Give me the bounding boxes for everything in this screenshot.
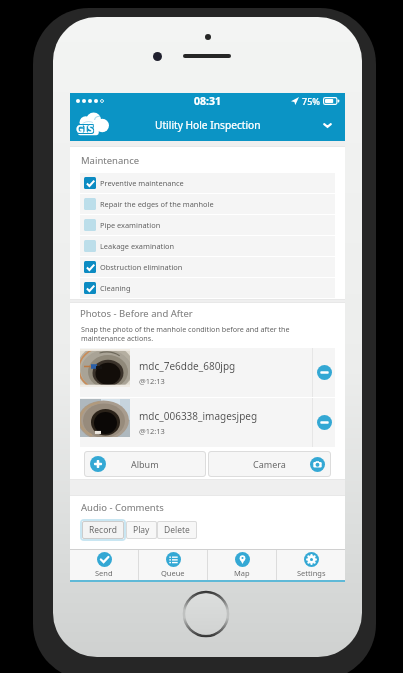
button[interactable]: Queue bbox=[139, 550, 207, 580]
staticText: Send bbox=[95, 568, 113, 578]
staticText: 75% bbox=[302, 95, 320, 107]
staticText: Maintenance bbox=[81, 154, 140, 167]
staticText: GIS bbox=[77, 120, 95, 135]
staticText: Play bbox=[133, 524, 150, 536]
staticText: GIS bbox=[76, 122, 94, 137]
button[interactable]: Cleaning bbox=[80, 278, 335, 298]
button[interactable]: Album bbox=[84, 451, 206, 477]
button[interactable]: Expand bbox=[317, 115, 337, 135]
staticText: Camera bbox=[253, 458, 286, 470]
staticText: Delete bbox=[164, 524, 190, 536]
staticText: @12:13 bbox=[139, 426, 165, 436]
button[interactable]: Leakage examination bbox=[80, 236, 335, 256]
button[interactable]: Send bbox=[70, 550, 138, 580]
staticText: Leakage examination bbox=[100, 241, 175, 251]
button[interactable]: Settings bbox=[277, 550, 345, 580]
button[interactable]: Repair the edges of the manhole bbox=[80, 194, 335, 214]
staticText: GIS bbox=[76, 121, 94, 136]
staticText: Settings bbox=[297, 568, 326, 578]
staticText: Queue bbox=[161, 568, 185, 578]
button[interactable]: mdc_7e6dde_680jpg bbox=[80, 348, 335, 397]
button[interactable]: Remove photo bbox=[313, 398, 335, 447]
staticText: Utility Hole Inspection bbox=[155, 118, 261, 132]
staticText: Preventive maintenance bbox=[100, 178, 184, 188]
staticText: GIS bbox=[75, 121, 93, 136]
staticText: GIS bbox=[75, 122, 93, 137]
staticText: @12:13 bbox=[139, 376, 165, 386]
button[interactable]: Obstruction elimination bbox=[80, 257, 335, 277]
staticText: Cleaning bbox=[100, 283, 131, 293]
staticText: mdc_006338_imagesjpeg bbox=[139, 409, 258, 423]
staticText: GIS bbox=[75, 120, 93, 135]
button[interactable]: Remove photo bbox=[313, 348, 335, 397]
staticText: Photos - Before and After bbox=[80, 307, 193, 320]
staticText: Pipe examination bbox=[100, 220, 161, 230]
button[interactable]: Record bbox=[82, 521, 124, 539]
staticText: Map bbox=[234, 568, 250, 578]
staticText: GIS bbox=[77, 121, 95, 136]
button[interactable]: Play bbox=[126, 521, 157, 539]
button[interactable]: Map bbox=[208, 550, 276, 580]
button[interactable]: mdc_006338_imagesjpeg bbox=[80, 398, 335, 447]
button[interactable]: Pipe examination bbox=[80, 215, 335, 235]
staticText: Snap the photo of the manhole condition … bbox=[81, 324, 303, 343]
staticText: Repair the edges of the manhole bbox=[100, 199, 214, 209]
staticText: GIS bbox=[76, 120, 94, 135]
staticText: Album bbox=[131, 458, 159, 470]
staticText: Audio - Comments bbox=[81, 501, 164, 514]
staticText: Record bbox=[89, 524, 117, 536]
staticText: GIS bbox=[77, 122, 95, 137]
button[interactable]: Camera bbox=[208, 451, 331, 477]
staticText: mdc_7e6dde_680jpg bbox=[139, 359, 236, 373]
button[interactable]: Delete bbox=[157, 521, 197, 539]
staticText: 08:31 bbox=[194, 94, 221, 108]
button[interactable]: Preventive maintenance bbox=[80, 173, 335, 193]
staticText: Obstruction elimination bbox=[100, 262, 183, 272]
